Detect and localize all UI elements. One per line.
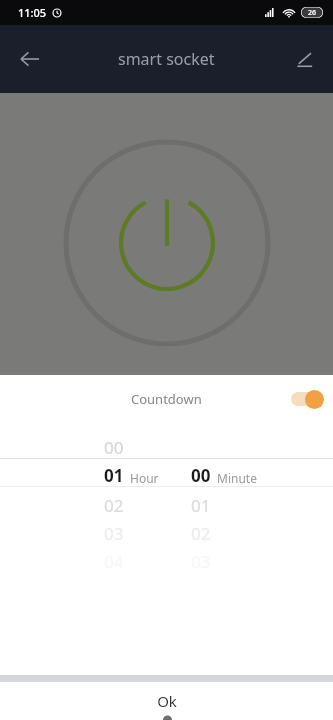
staticText: 00 [191,464,211,487]
button[interactable]: Edit [283,38,325,80]
staticText: 02 [191,522,211,545]
button[interactable]: 01 [104,464,159,487]
staticText: 02 [104,494,124,517]
button[interactable]: Power toggle [63,139,271,347]
staticText: 26 [308,8,317,18]
staticText: smart socket [118,48,215,70]
button[interactable]: Back [8,37,52,81]
button[interactable]: 00 [191,464,257,487]
staticText: 01 [104,464,124,487]
button[interactable]: Countdown [0,375,333,422]
staticText: 03 [104,522,124,545]
staticText: Countdown [131,390,202,408]
staticText: 01 [191,494,211,517]
staticText: Ok [157,691,177,711]
staticText: 11:05 [18,5,47,20]
staticText: Hour [130,470,159,486]
button[interactable]: Ok [0,682,333,720]
staticText: 00 [104,436,124,459]
staticText: Minute [217,470,257,486]
